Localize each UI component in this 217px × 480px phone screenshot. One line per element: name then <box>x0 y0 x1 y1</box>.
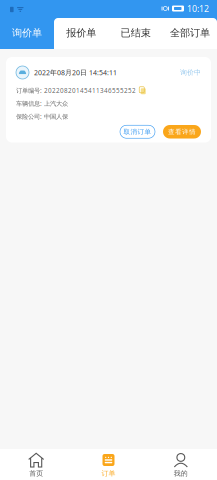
button[interactable]: 订单 <box>72 449 145 480</box>
staticText: 取消订单 <box>123 128 151 136</box>
staticText: 已结束 <box>121 27 151 39</box>
staticText: 查看详情 <box>168 128 196 136</box>
button[interactable]: 我的 <box>145 449 217 480</box>
staticText: 订单 <box>101 469 115 478</box>
staticText: 询价单 <box>12 27 42 39</box>
button[interactable]: 已结束 <box>108 17 163 49</box>
staticText: 2022年08月20日 14:54:11 <box>34 68 117 77</box>
button[interactable]: 查看详情 <box>163 125 201 138</box>
staticText: 订单编号: 20220820145411346555252 <box>16 86 136 95</box>
staticText: 我的 <box>174 469 188 478</box>
staticText: 车辆信息: 上汽大众 <box>16 99 68 108</box>
button[interactable]: 全部订单 <box>163 17 217 49</box>
staticText: 报价单 <box>66 27 96 39</box>
button[interactable]: 取消订单 <box>120 125 155 138</box>
button[interactable]: 首页 <box>0 449 72 480</box>
button[interactable]: 询价单 <box>0 17 54 49</box>
button[interactable]: 报价单 <box>54 17 108 49</box>
staticText: 询价中 <box>180 68 201 77</box>
staticText: 全部订单 <box>170 27 210 39</box>
staticText: 首页 <box>29 469 43 478</box>
staticText: 保险公司: 中国人保 <box>16 112 68 121</box>
staticText: 10:12 <box>187 2 209 14</box>
